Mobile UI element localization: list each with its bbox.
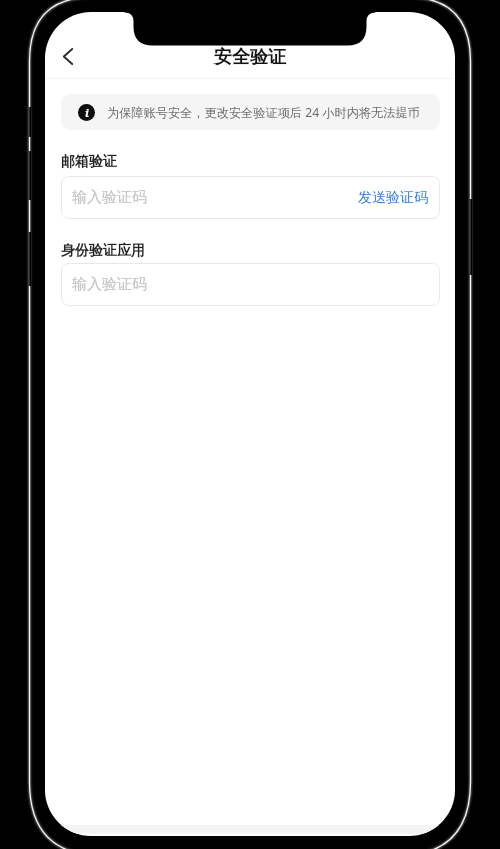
- button[interactable]: 发送验证码: [358, 189, 428, 207]
- button[interactable]: 输入验证码: [61, 263, 440, 306]
- staticText: 输入验证码: [72, 275, 147, 294]
- staticText: 身份验证应用: [61, 242, 145, 260]
- staticText: i: [85, 105, 89, 120]
- button[interactable]: Back: [46, 34, 90, 78]
- staticText: 发送验证码: [358, 189, 428, 207]
- staticText: 安全验证: [214, 46, 286, 69]
- staticText: 输入验证码: [72, 188, 147, 207]
- button[interactable]: 输入验证码: [61, 176, 440, 219]
- staticText: 为保障账号安全，更改安全验证项后 24 小时内将无法提币: [107, 104, 420, 121]
- staticText: 邮箱验证: [61, 153, 117, 171]
